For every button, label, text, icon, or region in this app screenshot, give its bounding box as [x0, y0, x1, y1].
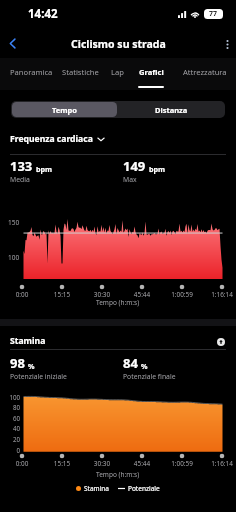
staticText: Lap [111, 67, 124, 77]
staticText: 30:30 [86, 290, 118, 299]
staticText: Ciclismo su strada [71, 37, 166, 51]
staticText: 30:30 [86, 459, 118, 468]
staticText: Potenziale [128, 484, 160, 493]
staticText: Max [123, 175, 137, 184]
staticText: bpm [36, 164, 53, 174]
staticText: % [141, 361, 148, 371]
button[interactable]: More options [213, 28, 236, 58]
button[interactable]: Statistiche [57, 58, 103, 90]
staticText: 98 [10, 354, 25, 372]
staticText: % [28, 361, 35, 371]
staticText: 1:16:14 [206, 459, 236, 468]
button[interactable]: Back [0, 28, 24, 58]
button[interactable]: Panoramica [5, 58, 57, 90]
staticText: Potenziale finale [123, 372, 176, 381]
staticText: 0:00 [6, 290, 38, 299]
staticText: Stamina [10, 335, 46, 347]
staticText: 1:16:14 [206, 290, 236, 299]
button[interactable]: Attrezzatura [176, 58, 234, 90]
staticText: Tempo (h:m:s) [96, 298, 140, 307]
staticText: 15:15 [46, 290, 78, 299]
staticText: Distanza [155, 105, 188, 115]
staticText: Tempo (h:m:s) [96, 470, 140, 479]
staticText: 45:44 [126, 459, 158, 468]
staticText: Panoramica [10, 67, 53, 77]
staticText: 0:00 [6, 459, 38, 468]
staticText: 0 [0, 446, 20, 454]
staticText: Frequenza cardiaca [10, 133, 93, 145]
staticText: Stamina [84, 484, 109, 493]
staticText: 150 [8, 218, 20, 227]
staticText: Tempo [52, 105, 78, 115]
staticText: 40 [0, 424, 20, 432]
staticText: 1:00:59 [166, 290, 198, 299]
staticText: 84 [123, 354, 138, 372]
staticText: 77 [209, 9, 218, 19]
staticText: Statistiche [62, 67, 99, 77]
staticText: 149 [123, 157, 146, 175]
staticText: 14:42 [28, 6, 58, 22]
staticText: 60 [0, 414, 20, 422]
staticText: 20 [0, 435, 20, 443]
staticText: Potenziale iniziale [10, 372, 67, 381]
staticText: 45:44 [126, 290, 158, 299]
staticText: Attrezzatura [183, 67, 227, 77]
staticText: 133 [10, 157, 33, 175]
button[interactable]: Info [214, 335, 227, 348]
staticText: 1:00:59 [166, 459, 198, 468]
button[interactable]: Frequenza cardiaca [10, 133, 105, 145]
staticText: 100 [8, 253, 20, 262]
staticText: 15:15 [46, 459, 78, 468]
staticText: 80 [0, 403, 20, 411]
staticText: Media [10, 175, 30, 184]
button[interactable]: Lap [105, 58, 129, 90]
button[interactable]: Tempo [12, 102, 117, 117]
button[interactable]: Grafici [134, 58, 168, 90]
staticText: Grafici [139, 67, 164, 77]
staticText: 100 [0, 393, 20, 401]
button[interactable]: Distanza [118, 101, 225, 118]
staticText: bpm [149, 164, 166, 174]
